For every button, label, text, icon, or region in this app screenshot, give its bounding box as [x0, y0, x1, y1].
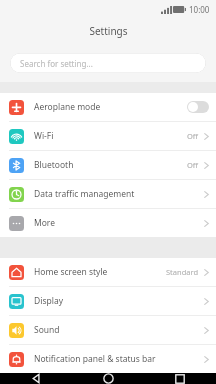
button[interactable]: Back — [0, 373, 72, 384]
staticText: Standard — [166, 267, 199, 277]
staticText: Bluetooth — [34, 159, 187, 171]
staticText: Home screen style — [34, 266, 166, 278]
button[interactable]: Aeroplane mode — [0, 93, 216, 121]
staticText: More — [34, 217, 204, 229]
staticText: Aeroplane mode — [34, 101, 187, 113]
staticText: Data traffic management — [34, 188, 204, 200]
button[interactable]: Wi-Fi — [0, 122, 216, 150]
staticText: Search for setting... — [20, 58, 93, 69]
staticText: Wi-Fi — [34, 130, 187, 142]
button[interactable]: Notification panel & status bar — [0, 345, 216, 373]
button[interactable]: More — [0, 209, 216, 237]
staticText: Off — [187, 131, 199, 141]
button[interactable]: Aeroplane mode toggle — [187, 101, 209, 113]
button[interactable]: Search for setting... — [10, 53, 206, 73]
staticText: 10:00 — [189, 4, 210, 15]
button[interactable]: Home screen style — [0, 258, 216, 286]
staticText: Settings — [89, 24, 128, 38]
button[interactable]: Sound — [0, 316, 216, 344]
staticText: Sound — [34, 324, 204, 336]
button[interactable]: Recent apps — [144, 373, 216, 384]
staticText: Notification panel & status bar — [34, 353, 204, 365]
button[interactable]: Home — [72, 373, 144, 384]
staticText: Off — [187, 160, 199, 170]
staticText: Display — [34, 295, 204, 307]
button[interactable]: Display — [0, 287, 216, 315]
button[interactable]: Data traffic management — [0, 180, 216, 208]
button[interactable]: Bluetooth — [0, 151, 216, 179]
